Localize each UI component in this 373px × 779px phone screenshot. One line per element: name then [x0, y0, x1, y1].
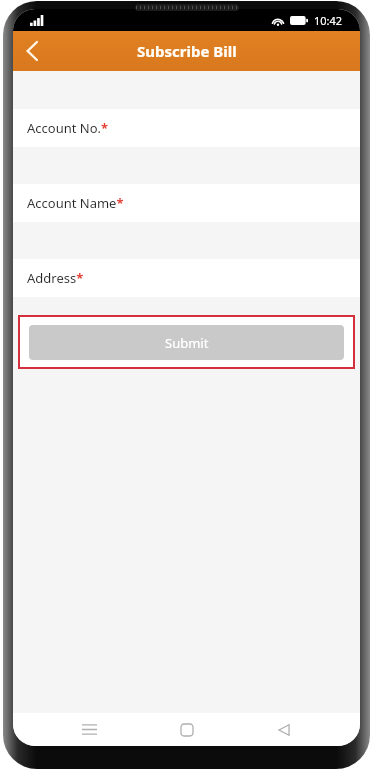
staticText: Subscribe Bill — [137, 41, 237, 61]
button[interactable]: Account Name* — [13, 184, 360, 222]
button[interactable]: Account No.* — [13, 109, 360, 147]
staticText: Address* — [27, 269, 84, 287]
button[interactable]: Address* — [13, 259, 360, 297]
staticText: Account No.* — [27, 119, 109, 137]
button[interactable]: Back — [13, 31, 53, 71]
button[interactable]: Recent apps — [67, 713, 111, 746]
staticText: 10:42 — [314, 13, 343, 28]
button[interactable]: Home — [165, 713, 209, 746]
button[interactable]: Submit — [29, 325, 344, 360]
staticText: Submit — [165, 334, 209, 352]
staticText: Account Name* — [27, 194, 124, 212]
button[interactable]: Back — [262, 713, 306, 746]
